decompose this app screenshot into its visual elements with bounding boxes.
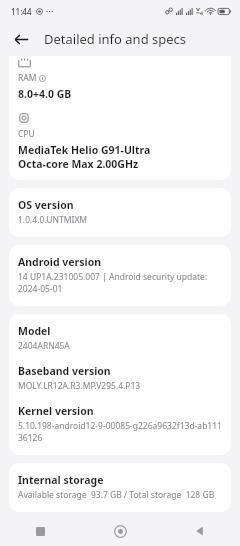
- button[interactable]: Recents: [0, 516, 80, 546]
- staticText: 5.10.198-android12-9-00085-g226a9632f13d…: [18, 420, 222, 432]
- staticText: 2404ARN45A: [18, 340, 70, 352]
- staticText: Available storage 93.7 GB / Total storag…: [18, 489, 215, 501]
- button[interactable]: Internal storage: [9, 463, 231, 512]
- button[interactable]: Android version: [9, 245, 231, 306]
- staticText: Internal storage: [18, 473, 104, 487]
- staticText: 1.0.4.0.UNTMIXM: [18, 214, 88, 226]
- staticText: Kernel version: [18, 404, 94, 418]
- button[interactable]: RAM: [9, 56, 231, 180]
- staticText: 14 UP1A.231005.007 | Android security up…: [18, 271, 208, 283]
- button[interactable]: Back: [160, 516, 240, 546]
- staticText: MediaTek Helio G91-Ultra: [18, 143, 151, 157]
- staticText: CPU: [18, 128, 35, 140]
- staticText: 2024-05-01: [18, 283, 63, 295]
- staticText: OS version: [18, 198, 74, 212]
- staticText: 36126: [18, 432, 43, 444]
- button[interactable]: Model: [9, 314, 231, 455]
- staticText: Detailed info and specs: [44, 30, 187, 48]
- staticText: MOLY.LR12A.R3.MP.V295.4.P13: [18, 380, 141, 392]
- button[interactable]: OS version: [9, 188, 231, 237]
- button[interactable]: Back: [6, 24, 36, 54]
- staticText: 8.0+4.0 GB: [18, 87, 72, 101]
- staticText: Baseband version: [18, 364, 111, 378]
- staticText: 11:44: [11, 6, 32, 17]
- button[interactable]: Home: [80, 516, 160, 546]
- staticText: Android version: [18, 255, 102, 269]
- staticText: Octa-core Max 2.00GHz: [18, 157, 139, 171]
- staticText: Model: [18, 324, 51, 338]
- staticText: RAM: [18, 72, 37, 84]
